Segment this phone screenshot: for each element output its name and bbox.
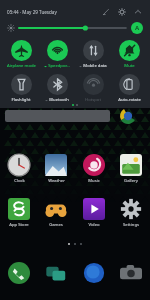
- staticText: Flashlight: [11, 97, 31, 103]
- button[interactable]: Auto brightness: [131, 22, 143, 34]
- button[interactable]: Collapse: [132, 6, 144, 18]
- staticText: Music: [88, 178, 100, 184]
- staticText: Clock: [14, 178, 25, 184]
- other: Chrome: [120, 108, 136, 124]
- button[interactable]: Auto-rotate: [112, 73, 146, 104]
- staticText: Hotspot: [85, 97, 101, 103]
- staticText: Mute: [124, 63, 135, 69]
- staticText: Auto-rotate: [118, 97, 141, 103]
- button[interactable]: Settings: [116, 6, 128, 18]
- button[interactable]: [19, 23, 126, 33]
- button[interactable]: Clock: [8, 153, 30, 185]
- button[interactable]: Settings: [120, 197, 142, 229]
- staticText: App Store: [9, 222, 29, 228]
- button[interactable]: Messages: [45, 262, 67, 284]
- staticText: Airplane mode: [7, 63, 36, 69]
- button[interactable]: Games: [45, 197, 67, 229]
- button[interactable]: Browser: [83, 262, 105, 284]
- staticText: Games: [49, 222, 63, 228]
- staticText: Bluetooth: [49, 97, 69, 103]
- button[interactable]: Camera: [120, 262, 142, 284]
- button[interactable]: Video: [83, 197, 105, 229]
- staticText: A: [135, 24, 140, 32]
- staticText: 05:44 · May 29 Tuesday: [7, 9, 57, 15]
- staticText: Gallery: [124, 178, 138, 184]
- button[interactable]: Weather: [45, 153, 67, 185]
- staticText: Settings: [123, 222, 139, 228]
- button[interactable]: Music: [83, 153, 105, 185]
- button[interactable]: Flashlight: [4, 73, 38, 104]
- button[interactable]: Edit: [100, 6, 112, 18]
- button[interactable]: App Store: [8, 197, 30, 229]
- button[interactable]: [5, 110, 110, 122]
- staticText: Weather: [48, 178, 65, 184]
- button[interactable]: Mute: [112, 39, 146, 70]
- button[interactable]: Bluetooth: [40, 73, 74, 104]
- staticText: Mobile data: [83, 63, 107, 69]
- button[interactable]: Airplane mode: [4, 39, 38, 70]
- button[interactable]: Hotspot: [76, 73, 110, 104]
- button[interactable]: Gallery: [120, 153, 142, 185]
- button[interactable]: Mobile data: [76, 39, 110, 70]
- button[interactable]: Speedpor...: [40, 39, 74, 70]
- staticText: Video: [88, 222, 100, 228]
- staticText: Speedpor...: [48, 63, 70, 69]
- button[interactable]: Phone: [8, 262, 30, 284]
